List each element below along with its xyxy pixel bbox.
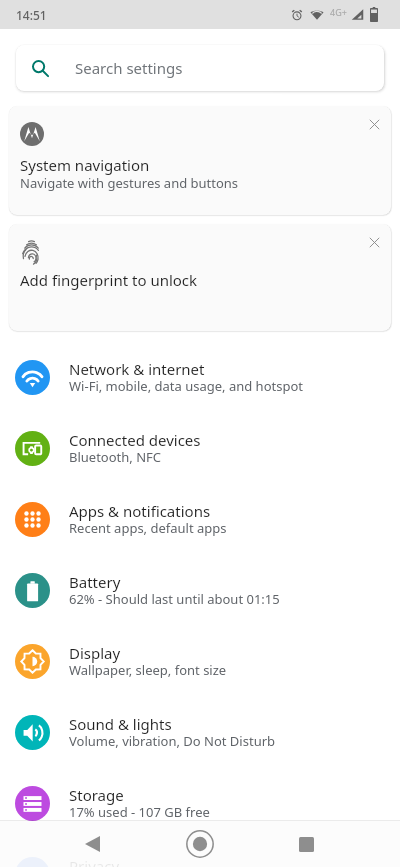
button[interactable]: Dismiss suggestion xyxy=(9,224,391,331)
staticText: Storage xyxy=(69,785,124,805)
staticText: 62% - Should last until about 01:15 xyxy=(69,590,280,608)
button[interactable]: Apps & notifications xyxy=(0,484,400,555)
staticText: Wi-Fi, mobile, data usage, and hotspot xyxy=(69,377,303,395)
staticText: Apps & notifications xyxy=(69,501,211,521)
button[interactable]: Home xyxy=(170,821,230,867)
staticText: Recent apps, default apps xyxy=(69,519,227,537)
button[interactable]: Storage xyxy=(0,768,400,839)
staticText: 17% used - 107 GB free xyxy=(69,803,210,821)
staticText: Display xyxy=(69,643,121,663)
staticText: Bluetooth, NFC xyxy=(69,448,162,466)
button[interactable]: Sound & lights xyxy=(0,697,400,768)
button[interactable]: Dismiss suggestion xyxy=(9,106,391,215)
button[interactable]: Dismiss suggestion xyxy=(356,106,391,142)
staticText: Battery xyxy=(69,572,121,592)
button[interactable]: Display xyxy=(0,626,400,697)
staticText: Connected devices xyxy=(69,430,201,450)
staticText: Network & internet xyxy=(69,359,205,379)
button[interactable]: Dismiss suggestion xyxy=(356,224,391,260)
staticText: Navigate with gestures and buttons xyxy=(20,174,239,192)
staticText: 4G+ xyxy=(330,6,347,18)
button[interactable]: Back xyxy=(62,821,122,867)
button[interactable]: Battery xyxy=(0,555,400,626)
staticText: Wallpaper, sleep, font size xyxy=(69,661,227,679)
staticText: 14:51 xyxy=(16,7,47,23)
button[interactable]: Search settings xyxy=(16,45,384,91)
staticText: Sound & lights xyxy=(69,714,172,734)
staticText: Volume, vibration, Do Not Disturb xyxy=(69,732,276,750)
button[interactable]: Connected devices xyxy=(0,413,400,484)
button[interactable]: Privacy xyxy=(0,839,400,867)
staticText: System navigation xyxy=(20,155,150,175)
staticText: Search settings xyxy=(75,58,183,78)
staticText: Privacy xyxy=(69,856,120,867)
button[interactable]: Recent apps xyxy=(276,821,336,867)
button[interactable]: Network & internet xyxy=(0,342,400,413)
staticText: Add fingerprint to unlock xyxy=(20,270,198,290)
